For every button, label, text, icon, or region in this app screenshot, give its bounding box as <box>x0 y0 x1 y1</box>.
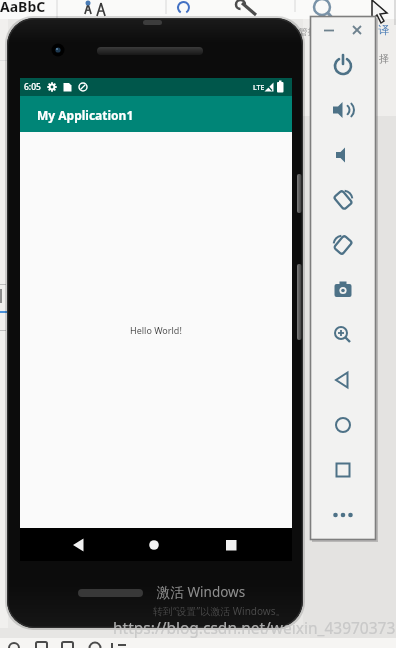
button[interactable] <box>143 534 165 556</box>
staticText: 激活 Windows <box>157 583 246 601</box>
staticText: 转到“设置”以激活 Windows。 <box>153 604 286 618</box>
button[interactable] <box>327 184 359 216</box>
button[interactable] <box>327 94 359 126</box>
button[interactable] <box>327 139 359 171</box>
staticText: AaBbC <box>0 0 46 16</box>
button[interactable] <box>327 319 359 351</box>
button[interactable] <box>321 22 337 38</box>
button[interactable] <box>327 274 359 306</box>
staticText: 择 <box>379 52 389 65</box>
staticText: My Application1 <box>37 107 134 123</box>
button[interactable] <box>327 229 359 261</box>
button[interactable] <box>349 22 365 38</box>
staticText: LTE <box>253 83 265 93</box>
button[interactable] <box>327 454 359 486</box>
button[interactable] <box>220 534 242 556</box>
staticText: https://blog.csdn.net/weixin_43970373 <box>113 617 396 638</box>
button[interactable] <box>327 49 359 81</box>
button[interactable] <box>327 409 359 441</box>
staticText: Hello World! <box>130 324 182 336</box>
staticText: 6:05 <box>24 81 41 93</box>
staticText: 译 <box>378 23 389 37</box>
button[interactable] <box>327 364 359 396</box>
button[interactable] <box>327 499 359 531</box>
staticText: 管技 <box>299 26 317 37</box>
button[interactable] <box>70 534 92 556</box>
